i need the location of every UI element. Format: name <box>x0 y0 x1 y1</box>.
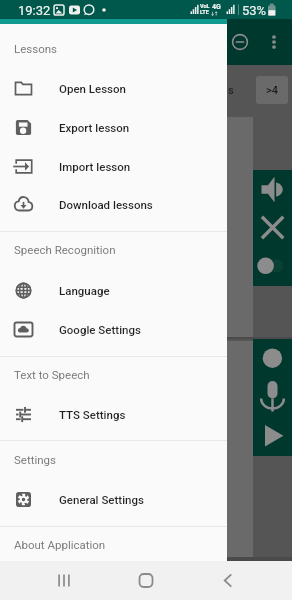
staticText: LTE <box>200 9 209 15</box>
staticText: Download lessons <box>59 198 153 211</box>
button[interactable]: Open Lesson <box>0 69 227 108</box>
button[interactable]: Back <box>206 561 250 600</box>
button[interactable]: Language <box>0 271 227 310</box>
button[interactable]: TTS Settings <box>0 395 227 434</box>
button[interactable]: General Settings <box>0 480 227 519</box>
staticText: 53% <box>242 3 267 18</box>
button[interactable]: >4 <box>256 76 288 104</box>
button[interactable]: Recents <box>42 561 86 600</box>
button[interactable]: Import lesson <box>0 147 227 186</box>
staticText: Open Lesson <box>59 82 126 95</box>
staticText: General Settings <box>59 493 144 506</box>
staticText: Settings <box>14 453 56 466</box>
staticText: VoL <box>200 3 210 9</box>
staticText: s <box>228 84 234 97</box>
button[interactable]: Collapse <box>226 28 254 56</box>
staticText: Lessons <box>14 42 58 55</box>
staticText: TTS Settings <box>59 408 126 421</box>
staticText: Speech Recognition <box>14 243 116 256</box>
staticText: Import lesson <box>59 160 131 173</box>
staticText: Export lesson <box>59 121 130 134</box>
button[interactable]: Home <box>124 561 168 600</box>
button[interactable]: More options <box>260 28 288 56</box>
staticText: Language <box>59 284 110 297</box>
button[interactable]: Export lesson <box>0 108 227 147</box>
button[interactable]: Download lessons <box>0 185 227 224</box>
staticText: 19:32 <box>18 3 51 18</box>
staticText: Google Settings <box>59 323 141 336</box>
staticText: About Application <box>14 538 106 551</box>
staticText: Text to Speech <box>14 368 90 381</box>
staticText: 4G <box>212 3 221 11</box>
staticText: >4 <box>266 84 278 97</box>
button[interactable]: Google Settings <box>0 310 227 349</box>
